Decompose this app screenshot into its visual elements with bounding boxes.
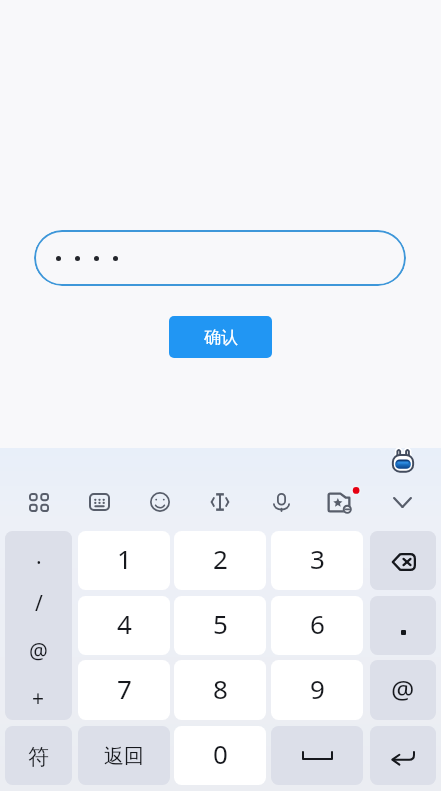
button[interactable]: 返回 back [78, 726, 170, 785]
button[interactable]: Hide keyboard [380, 480, 424, 524]
staticText: 7 [117, 671, 132, 706]
button[interactable]: . [5, 531, 72, 720]
button[interactable]: 5 [174, 596, 266, 655]
staticText: 确认 [204, 327, 238, 348]
button[interactable]: At sign [370, 660, 436, 720]
button[interactable]: Assistant avatar [390, 448, 416, 474]
button[interactable]: Enter [370, 726, 436, 785]
button[interactable] [34, 230, 406, 286]
staticText: . [36, 542, 42, 571]
button[interactable]: Emoji [138, 480, 182, 524]
staticText: @ [391, 671, 415, 706]
staticText: @ [29, 637, 48, 666]
staticText: 5 [213, 606, 228, 641]
button[interactable]: 1 [78, 531, 170, 590]
button[interactable]: Move cursor [198, 480, 242, 524]
button[interactable]: Keyboard layout [77, 480, 121, 524]
staticText: 返回 [104, 744, 144, 769]
button[interactable]: 4 [78, 596, 170, 655]
button[interactable]: 0 [174, 726, 266, 785]
staticText: + [32, 684, 45, 713]
button[interactable]: 确认 [169, 316, 272, 358]
button[interactable]: 9 [271, 660, 363, 720]
button[interactable]: Space [271, 726, 363, 785]
button[interactable]: 2 [174, 531, 266, 590]
staticText: 3 [310, 541, 325, 576]
staticText: 9 [310, 671, 325, 706]
button[interactable]: 3 [271, 531, 363, 590]
button[interactable]: Voice input [259, 480, 303, 524]
button[interactable]: 符 symbols [5, 726, 72, 785]
button[interactable]: 8 [174, 660, 266, 720]
staticText: 8 [213, 671, 228, 706]
staticText: 1 [117, 541, 132, 576]
staticText: / [35, 589, 43, 618]
button[interactable]: Backspace [370, 531, 436, 590]
staticText: 2 [213, 541, 228, 576]
button[interactable]: Stickers [319, 480, 363, 524]
button[interactable]: 6 [271, 596, 363, 655]
button[interactable]: Period [370, 596, 436, 655]
staticText: 符 [28, 744, 49, 770]
staticText: 4 [117, 606, 132, 641]
staticText: 0 [213, 736, 228, 771]
staticText: 6 [310, 606, 325, 641]
button[interactable]: Apps [17, 480, 61, 524]
button[interactable]: 7 [78, 660, 170, 720]
